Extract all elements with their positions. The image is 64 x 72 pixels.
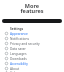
staticText: Help bbox=[10, 71, 17, 72]
staticText: Notifications bbox=[10, 37, 29, 41]
button[interactable]: Data saver bbox=[0, 46, 64, 51]
button[interactable]: Settings bbox=[0, 26, 64, 31]
button[interactable]: Privacy and security bbox=[0, 41, 64, 46]
button[interactable]: About bbox=[0, 66, 64, 71]
button[interactable]: Notifications bbox=[0, 36, 64, 41]
staticText: Languages bbox=[10, 52, 27, 56]
staticText: Settings bbox=[10, 27, 24, 31]
button[interactable]: Help bbox=[0, 71, 64, 72]
staticText: Privacy and security bbox=[10, 42, 40, 46]
button[interactable]: Upgrade bbox=[2, 19, 62, 23]
button[interactable]: Downloads bbox=[0, 56, 64, 61]
button[interactable]: Accessibility bbox=[0, 61, 64, 66]
staticText: Downloads bbox=[10, 57, 27, 61]
staticText: About bbox=[10, 67, 20, 71]
button[interactable]: Appearance bbox=[0, 31, 64, 36]
staticText: More features bbox=[0, 2, 64, 15]
staticText: Accessibility bbox=[10, 62, 28, 66]
staticText: Appearance bbox=[10, 32, 28, 36]
button[interactable]: Languages bbox=[0, 51, 64, 56]
staticText: Data saver bbox=[10, 47, 26, 51]
